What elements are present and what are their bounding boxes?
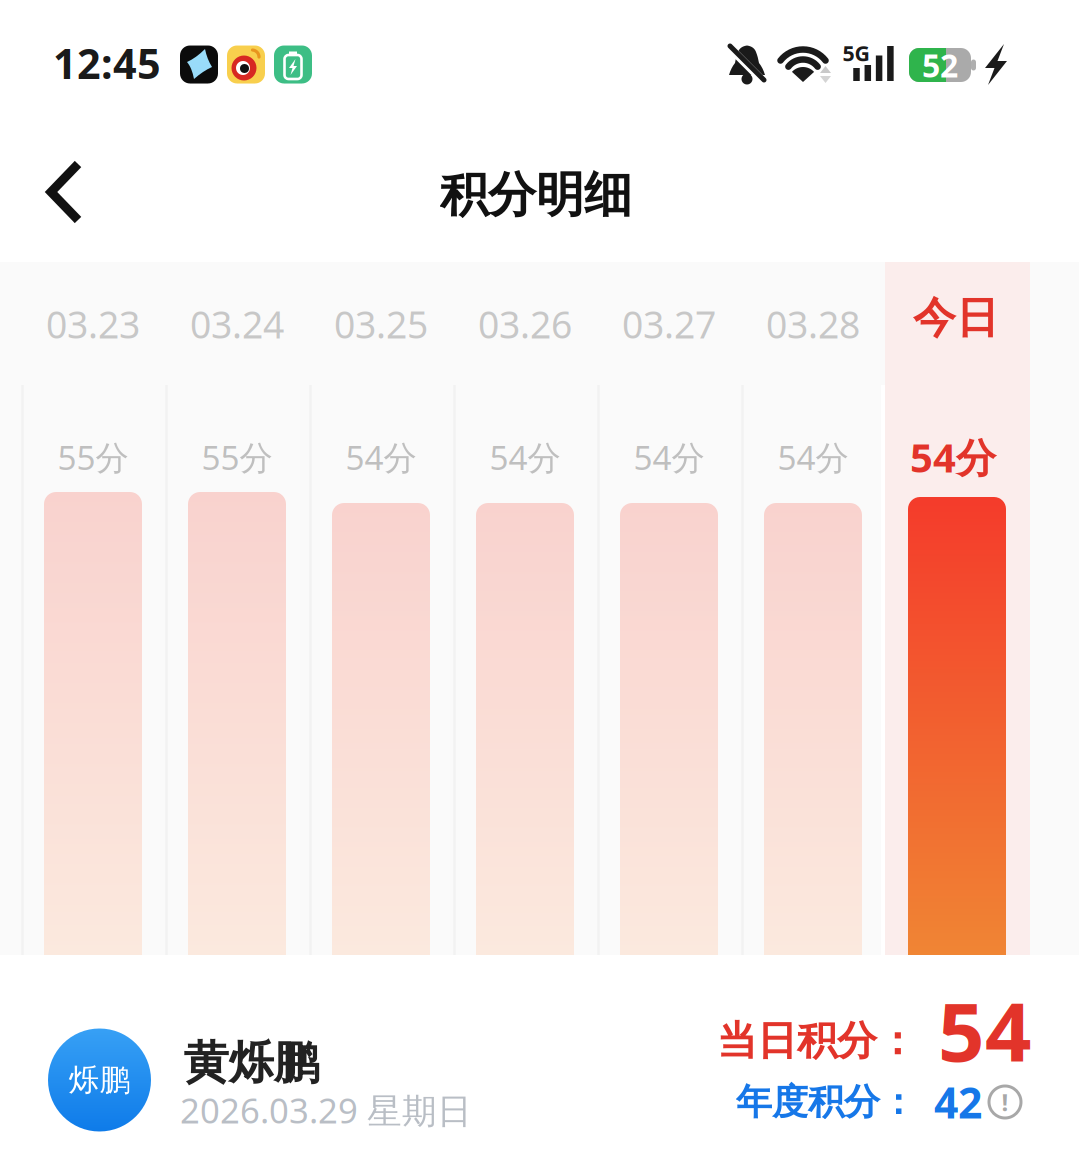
staticText: 黄烁鹏 bbox=[183, 1035, 318, 1091]
staticText: 03.25 bbox=[334, 299, 428, 349]
button[interactable]: 年度积分说明 bbox=[987, 1084, 1023, 1120]
staticText: 当日积分： bbox=[717, 1016, 917, 1065]
staticText: 今日 bbox=[913, 292, 999, 344]
staticText: 03.28 bbox=[766, 299, 860, 349]
staticText: 积分明细 bbox=[440, 165, 632, 224]
staticText: 年度积分： bbox=[736, 1080, 916, 1124]
staticText: 2026.03.29 星期日 bbox=[180, 1087, 472, 1133]
staticText: 54分 bbox=[345, 435, 416, 479]
button[interactable]: Back bbox=[47, 162, 82, 222]
staticText: 54 bbox=[938, 976, 1032, 1084]
staticText: 54分 bbox=[910, 430, 996, 483]
staticText: 12:45 bbox=[53, 36, 161, 90]
staticText: 52 bbox=[922, 44, 958, 86]
staticText: 54分 bbox=[777, 435, 848, 479]
staticText: 03.26 bbox=[478, 299, 572, 349]
staticText: 42 bbox=[934, 1074, 982, 1130]
staticText: 55分 bbox=[201, 435, 272, 479]
staticText: 烁鹏 bbox=[68, 1061, 130, 1099]
staticText: 54分 bbox=[489, 435, 560, 479]
staticText: 03.23 bbox=[46, 299, 140, 349]
staticText: 55分 bbox=[57, 435, 128, 479]
staticText: ! bbox=[1001, 1086, 1008, 1118]
staticText: 5G bbox=[842, 39, 869, 67]
staticText: 03.24 bbox=[190, 299, 284, 349]
staticText: 03.27 bbox=[622, 299, 716, 349]
staticText: 54分 bbox=[633, 435, 704, 479]
